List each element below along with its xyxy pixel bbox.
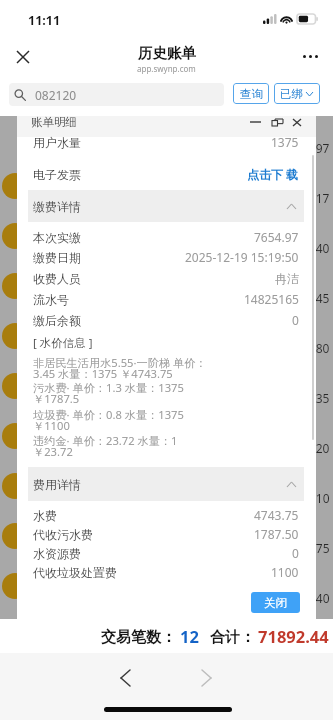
staticText: 用户水量 bbox=[33, 135, 81, 150]
staticText: 082120 bbox=[35, 87, 77, 103]
staticText: 查询 bbox=[240, 87, 263, 101]
staticText: 71892.44 bbox=[258, 625, 329, 647]
staticText: ￥1787.5 bbox=[33, 391, 80, 405]
staticText: 1920 bbox=[302, 440, 330, 454]
button[interactable] bbox=[2, 423, 28, 449]
staticText: 已绑 bbox=[280, 87, 303, 101]
staticText: 775 bbox=[309, 540, 330, 554]
staticText: 关闭 bbox=[264, 596, 287, 610]
button[interactable] bbox=[2, 573, 28, 599]
button[interactable]: 缴费日期 bbox=[33, 248, 299, 266]
button[interactable]: 水费 bbox=[33, 506, 299, 524]
button[interactable]: 缴费详情 bbox=[28, 190, 304, 222]
button[interactable]: 流水号 bbox=[33, 290, 299, 308]
staticText: 代收垃圾处置费 bbox=[33, 565, 117, 580]
staticText: 640 bbox=[309, 590, 330, 604]
staticText: 4743.75 bbox=[254, 507, 299, 523]
staticText: 收费人员 bbox=[33, 271, 81, 286]
staticText: 1375 bbox=[271, 134, 299, 150]
button[interactable]: 用户水量 bbox=[33, 133, 299, 151]
staticText: 垃圾费· 单价：0.8 水量：1375 bbox=[33, 407, 184, 421]
button[interactable]: 关闭 bbox=[251, 592, 300, 613]
button[interactable] bbox=[2, 173, 28, 199]
button[interactable] bbox=[2, 323, 28, 349]
button[interactable] bbox=[2, 223, 28, 249]
staticText: 合计： bbox=[210, 628, 255, 647]
staticText: ￥1100 bbox=[33, 418, 70, 432]
staticText: 账单明细 bbox=[31, 115, 77, 129]
button[interactable]: 缴后余额 bbox=[33, 311, 299, 329]
staticText: 2235 bbox=[302, 390, 330, 404]
button[interactable]: Maximize bbox=[266, 114, 288, 130]
staticText: 11:11 bbox=[28, 12, 61, 29]
staticText: 1787.50 bbox=[254, 526, 299, 542]
staticText: 水费 bbox=[33, 508, 57, 523]
button[interactable]: More options bbox=[297, 43, 323, 69]
staticText: 12 bbox=[180, 625, 199, 647]
staticText: 缴后余额 bbox=[33, 313, 81, 328]
staticText: 水资源费 bbox=[33, 546, 81, 561]
button[interactable]: Forward bbox=[188, 660, 224, 696]
staticText: 电子发票 bbox=[33, 167, 81, 182]
staticText: 2025-12-19 15:19:50 bbox=[185, 249, 299, 265]
staticText: 0 bbox=[292, 312, 299, 328]
staticText: [ 水价信息 ] bbox=[33, 335, 93, 349]
button[interactable]: Back bbox=[107, 660, 143, 696]
staticText: 3380 bbox=[302, 340, 330, 354]
button[interactable]: 已绑 bbox=[274, 83, 320, 104]
staticText: 点击下 载 bbox=[247, 166, 299, 182]
staticText: 4445 bbox=[302, 290, 330, 304]
staticText: 流水号 bbox=[33, 292, 69, 307]
button[interactable]: 本次实缴 bbox=[33, 228, 299, 246]
staticText: 810 bbox=[309, 490, 330, 504]
button[interactable] bbox=[2, 273, 28, 299]
button[interactable]: 电子发票 bbox=[33, 165, 299, 183]
staticText: 3.45 水量：1375 ￥4743.75 bbox=[33, 366, 173, 380]
staticText: ￥23.72 bbox=[33, 444, 73, 458]
staticText: 缴费日期 bbox=[33, 250, 81, 265]
staticText: 费用详情 bbox=[33, 477, 81, 492]
button[interactable]: 代收污水费 bbox=[33, 525, 299, 543]
staticText: 7654.97 bbox=[254, 229, 299, 245]
staticText: 非居民生活用水5.55·一阶梯 单价： bbox=[33, 355, 207, 369]
button[interactable]: Close bbox=[10, 44, 36, 70]
button[interactable]: Close dialog bbox=[288, 114, 306, 130]
button[interactable]: 查询 bbox=[233, 83, 269, 104]
button[interactable]: 代收垃圾处置费 bbox=[33, 563, 299, 581]
staticText: 历史账单 bbox=[138, 44, 196, 62]
staticText: 6140 bbox=[302, 240, 330, 254]
staticText: 本次实缴 bbox=[33, 230, 81, 245]
button[interactable]: Minimize bbox=[244, 114, 266, 130]
staticText: 交易笔数： bbox=[101, 628, 176, 647]
staticText: 缴费详情 bbox=[33, 199, 81, 214]
staticText: 7654.97 bbox=[285, 140, 330, 154]
button[interactable]: 水资源费 bbox=[33, 544, 299, 562]
staticText: 冉洁 bbox=[275, 271, 299, 286]
staticText: 代收污水费 bbox=[33, 527, 93, 542]
staticText: 0 bbox=[292, 545, 299, 561]
staticText: 14825165 bbox=[244, 291, 299, 307]
staticText: 违约金· 单价：23.72 水量：1 bbox=[33, 433, 178, 447]
button[interactable]: 收费人员 bbox=[33, 269, 299, 287]
staticText: 污水费· 单价：1.3 水量：1375 bbox=[33, 380, 184, 394]
staticText: 1787.17 bbox=[285, 190, 330, 204]
staticText: app.swynp.com bbox=[137, 63, 196, 74]
button[interactable]: 082120 bbox=[9, 83, 224, 106]
button[interactable] bbox=[2, 373, 28, 399]
button[interactable] bbox=[2, 523, 28, 549]
button[interactable]: 费用详情 bbox=[28, 467, 304, 501]
button[interactable] bbox=[2, 473, 28, 499]
staticText: 1100 bbox=[271, 564, 299, 580]
